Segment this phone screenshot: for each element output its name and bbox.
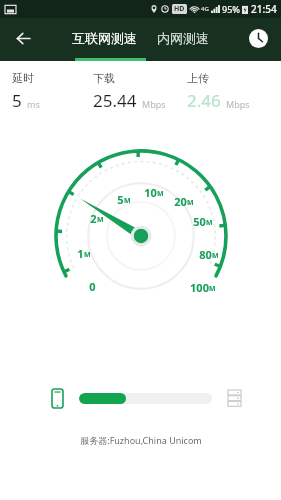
staticText: M [212,251,219,261]
staticText: M [206,218,213,228]
button[interactable]: 互联网测速 [66,24,143,52]
staticText: 5 [117,192,124,207]
staticText: 服务器:Fuzhou,China Unicom [80,434,202,446]
staticText: 下载 [93,71,115,85]
button[interactable]: Back [6,21,40,55]
staticText: 2.46 [187,89,221,112]
staticText: 10 [144,185,157,200]
staticText: 上传 [187,71,209,85]
button[interactable]: History [243,23,273,53]
staticText: M [187,198,194,208]
other: Device [52,389,63,408]
staticText: M [124,196,131,206]
button[interactable]: 内网测速 [151,24,215,52]
staticText: 21:54 [251,2,277,16]
staticText: 延时 [12,71,34,85]
staticText: 100 [190,280,209,295]
staticText: Mbps [142,98,166,110]
staticText: M [209,284,216,294]
staticText: 25.44 [93,89,137,112]
staticText: 4G [201,5,209,13]
staticText: 50 [193,214,206,229]
other: Server [228,390,241,407]
staticText: 1 [77,246,84,261]
staticText: 0 [89,279,96,294]
staticText: M [97,215,104,225]
staticText: 5 [12,89,22,112]
staticText: M [84,250,91,260]
staticText: 内网测速 [157,30,209,46]
staticText: HD [174,4,185,14]
staticText: Mbps [226,98,250,110]
staticText: ms [27,98,40,110]
staticText: M [157,189,164,199]
staticText: 20 [174,194,187,209]
staticText: 2 [90,211,97,226]
staticText: 互联网测速 [72,30,137,46]
staticText: 95% [222,3,240,15]
staticText: 80 [199,247,212,262]
